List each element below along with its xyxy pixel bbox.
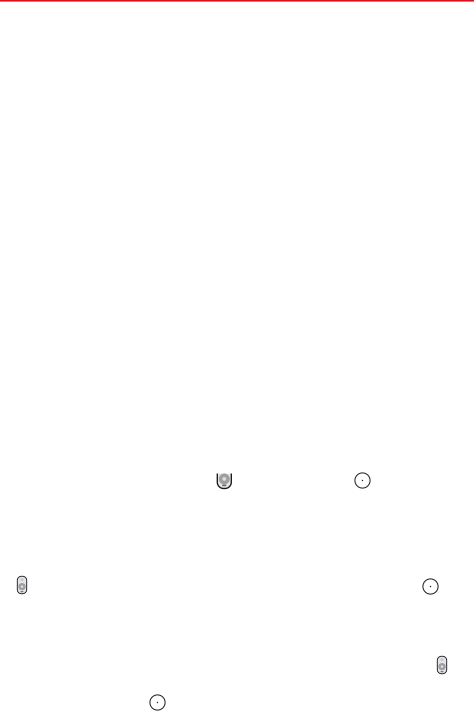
button[interactable]: Record [354,472,371,489]
button[interactable]: Media player [16,575,28,595]
button[interactable]: Record [422,578,439,595]
button[interactable]: Media player [436,655,448,675]
button[interactable]: Record [149,694,166,711]
button[interactable]: Media player [216,473,233,490]
